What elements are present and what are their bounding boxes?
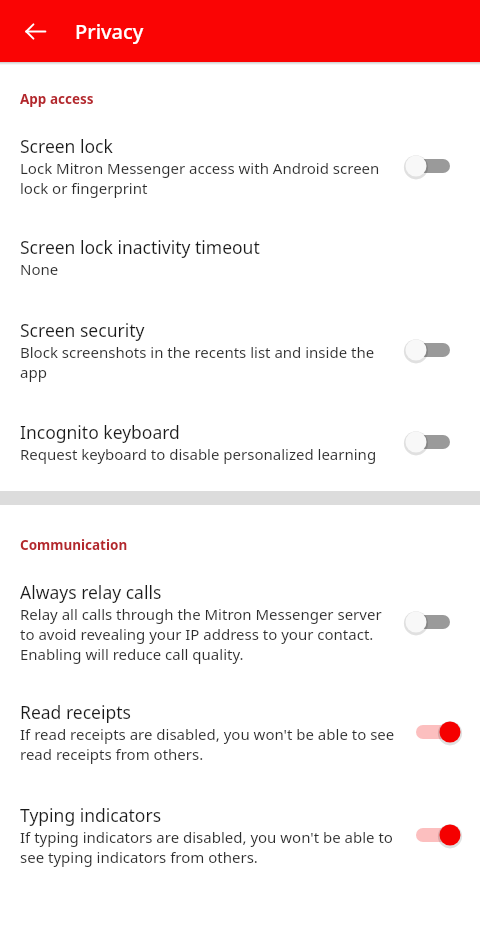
staticText: Block screenshots in the recents list an… (20, 342, 395, 382)
button[interactable]: Screen security, off (408, 329, 468, 371)
staticText: Incognito keyboard (20, 420, 180, 444)
button[interactable]: Typing indicators (0, 764, 480, 867)
staticText: Lock Mitron Messenger access with Androi… (20, 158, 395, 198)
staticText: App access (20, 90, 480, 108)
staticText: Privacy (75, 18, 144, 45)
button[interactable]: Back (11, 7, 59, 55)
staticText: Screen lock inactivity timeout (20, 235, 260, 259)
staticText: Typing indicators (20, 803, 162, 827)
staticText: Screen lock (20, 134, 113, 158)
staticText: Screen security (20, 318, 145, 342)
button[interactable]: Screen security (0, 279, 480, 382)
button[interactable]: Read receipts, on (408, 711, 468, 753)
button[interactable]: Screen lock, off (408, 145, 468, 187)
staticText: None (20, 259, 59, 279)
staticText: Always relay calls (20, 580, 162, 604)
button[interactable]: Read receipts (0, 664, 480, 764)
staticText: Relay all calls through the Mitron Messe… (20, 604, 395, 664)
staticText: Communication (20, 536, 480, 554)
button[interactable]: Screen lock (0, 108, 480, 198)
staticText: Read receipts (20, 700, 131, 724)
staticText: If read receipts are disabled, you won't… (20, 724, 395, 764)
button[interactable]: Screen lock inactivity timeout (0, 198, 480, 279)
button[interactable]: Always relay calls, off (408, 601, 468, 643)
staticText: If typing indicators are disabled, you w… (20, 827, 395, 867)
button[interactable]: Always relay calls (0, 554, 480, 664)
button[interactable]: Incognito keyboard, off (408, 421, 468, 463)
button[interactable]: Typing indicators, on (408, 814, 468, 856)
staticText: Request keyboard to disable personalized… (20, 444, 377, 464)
button[interactable]: Incognito keyboard (0, 382, 480, 464)
